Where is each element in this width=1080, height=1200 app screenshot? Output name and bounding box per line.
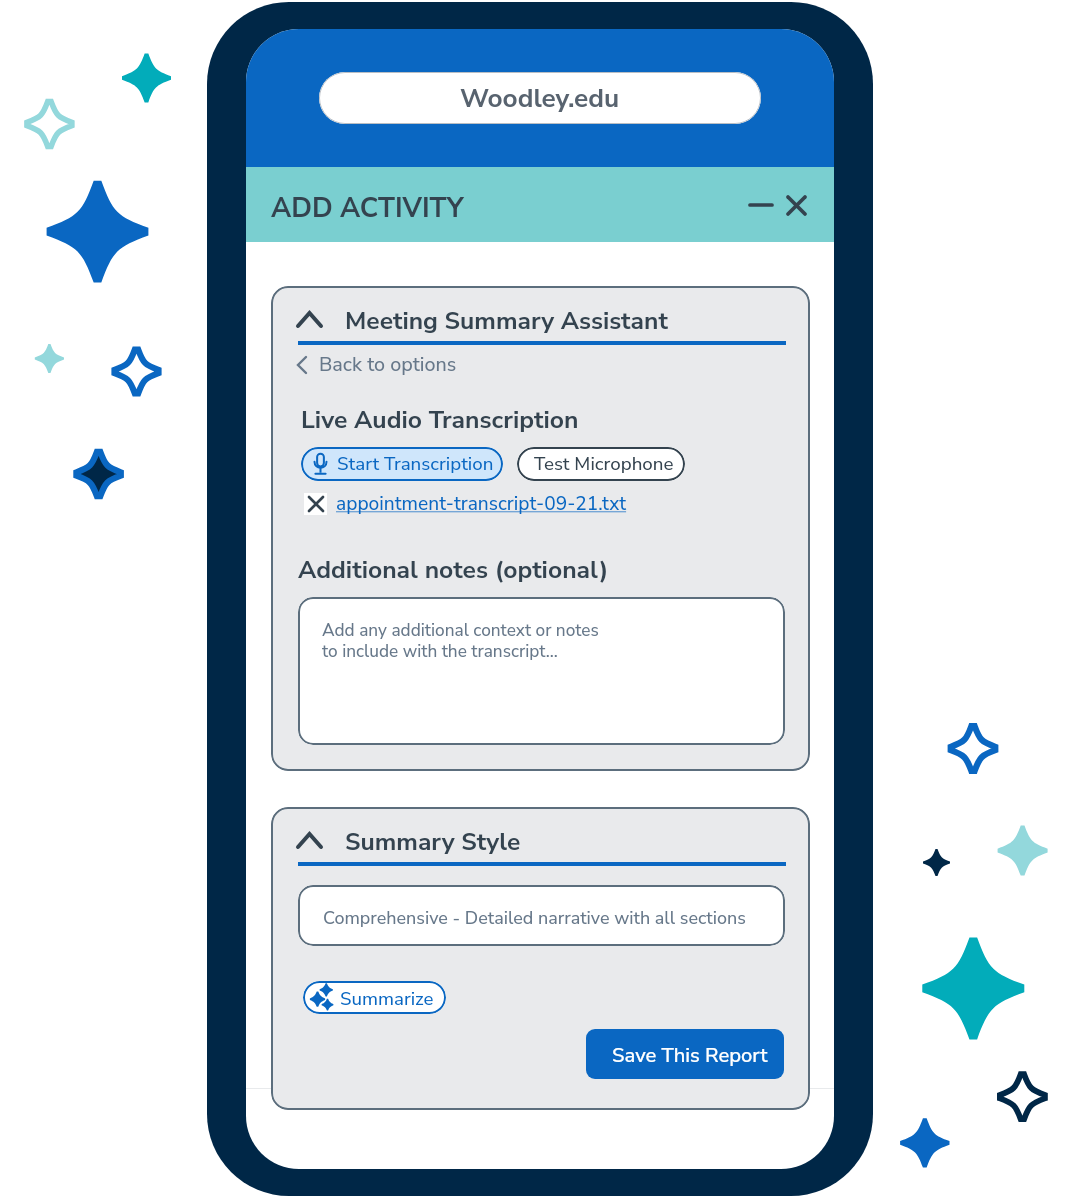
button[interactable]: Test Microphone: [517, 447, 685, 481]
staticText: Start Transcription: [337, 451, 494, 477]
staticText: Summary Style: [345, 825, 521, 859]
button[interactable]: Start Transcription: [301, 447, 503, 481]
staticText: Meeting Summary Assistant: [345, 304, 668, 338]
staticText: Save This Report: [612, 1042, 768, 1070]
staticText: Live Audio Transcription: [301, 403, 579, 437]
staticText: Comprehensive - Detailed narrative with …: [323, 906, 746, 930]
button[interactable]: Save This Report: [586, 1029, 784, 1079]
button[interactable]: Comprehensive - Detailed narrative with …: [298, 885, 785, 946]
button[interactable]: Summarize: [303, 981, 446, 1014]
button[interactable]: Woodley.edu: [319, 72, 761, 124]
button[interactable]: Remove attachment: [304, 493, 327, 515]
staticText: to include with the transcript...: [322, 640, 558, 663]
button[interactable]: Minimize: [741, 186, 781, 224]
button[interactable]: Add any additional context or notes: [298, 597, 785, 745]
staticText: ADD ACTIVITY: [271, 190, 464, 227]
staticText: Summarize: [340, 986, 434, 1011]
staticText: Back to options: [319, 351, 457, 378]
button[interactable]: Back to options: [294, 351, 466, 383]
staticText: Add any additional context or notes: [322, 619, 599, 642]
staticText: Test Microphone: [534, 451, 674, 477]
button[interactable]: Summary Style: [287, 821, 786, 862]
button[interactable]: Close: [776, 185, 817, 225]
staticText: Woodley.edu: [460, 81, 620, 117]
staticText: Additional notes (optional): [298, 553, 609, 587]
button[interactable]: Meeting Summary Assistant: [287, 300, 786, 341]
button[interactable]: appointment-transcript-09-21.txt: [336, 491, 627, 517]
